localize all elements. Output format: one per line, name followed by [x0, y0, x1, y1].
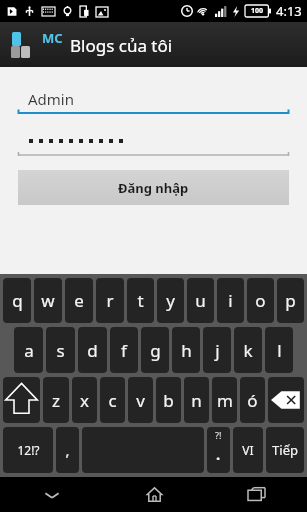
button[interactable]: p	[277, 278, 304, 323]
staticText: Admin	[28, 89, 74, 109]
staticText: w	[41, 289, 55, 312]
button[interactable]: Home	[103, 477, 205, 512]
button[interactable]	[18, 125, 289, 156]
button[interactable]: v	[128, 377, 153, 423]
button[interactable]: Đăng nhập	[18, 170, 289, 205]
staticText: .	[216, 444, 221, 464]
staticText: MC	[42, 29, 63, 47]
button[interactable]: h	[172, 327, 200, 373]
button[interactable]: q	[3, 278, 31, 323]
button[interactable]: 12!?	[3, 427, 53, 473]
staticText: r	[106, 289, 114, 312]
staticText: Blogs của tôi	[70, 34, 173, 57]
staticText: VI	[242, 442, 254, 458]
staticText: 4:13	[276, 2, 302, 20]
staticText: q	[12, 289, 23, 312]
button[interactable]: Hide keyboard	[0, 477, 103, 512]
button[interactable]: Tiếp	[266, 427, 304, 473]
staticText: a	[24, 339, 34, 362]
staticText: j	[215, 339, 220, 362]
button[interactable]: i	[217, 278, 244, 323]
button[interactable]: t	[127, 278, 154, 323]
button[interactable]: r	[96, 278, 124, 323]
button[interactable]: ó	[240, 377, 265, 423]
staticText: Tiếp	[272, 441, 298, 459]
staticText: ó	[247, 389, 258, 412]
staticText: t	[137, 289, 144, 312]
button[interactable]: n	[184, 377, 209, 423]
button[interactable]: ?!	[207, 427, 230, 473]
button[interactable]: j	[203, 327, 231, 373]
staticText: l	[277, 339, 282, 362]
staticText: h	[181, 339, 192, 362]
button[interactable]: ,	[56, 427, 79, 473]
staticText: y	[166, 289, 175, 312]
staticText: x	[80, 389, 89, 412]
button[interactable]: b	[156, 377, 181, 423]
button[interactable]: e	[65, 278, 93, 323]
staticText: 100	[251, 6, 264, 16]
button[interactable]: Shift	[3, 377, 40, 423]
staticText: g	[150, 339, 161, 362]
button[interactable]: y	[157, 278, 184, 323]
staticText: d	[87, 339, 98, 362]
button[interactable]: w	[34, 278, 62, 323]
staticText: n	[191, 389, 202, 412]
button[interactable]: x	[72, 377, 97, 423]
button[interactable]: u	[187, 278, 214, 323]
button[interactable]: d	[78, 327, 107, 373]
button[interactable]: o	[247, 278, 274, 323]
button[interactable]: Recent apps	[205, 477, 307, 512]
staticText: m	[217, 389, 233, 412]
button[interactable]: s	[46, 327, 75, 373]
staticText: e	[74, 289, 84, 312]
button[interactable]: m	[212, 377, 237, 423]
staticText: f	[121, 339, 127, 362]
staticText: z	[52, 389, 60, 412]
button[interactable]: z	[43, 377, 69, 423]
staticText: v	[136, 389, 145, 412]
staticText: p	[285, 289, 296, 312]
staticText: ,	[65, 440, 70, 460]
staticText: Đăng nhập	[118, 179, 189, 197]
staticText: k	[243, 339, 253, 362]
button[interactable]: a	[14, 327, 43, 373]
staticText: b	[163, 389, 174, 412]
staticText: s	[56, 339, 65, 362]
button[interactable]: k	[234, 327, 262, 373]
staticText: 12!?	[17, 442, 40, 458]
staticText: c	[108, 389, 117, 412]
button[interactable]: c	[100, 377, 125, 423]
button[interactable]: Backspace	[268, 377, 304, 423]
staticText: i	[228, 289, 233, 312]
button[interactable]: VI	[233, 427, 263, 473]
button[interactable]: l	[265, 327, 293, 373]
staticText: u	[195, 289, 206, 312]
button[interactable]: Admin	[18, 83, 289, 114]
staticText: ?!	[215, 429, 222, 441]
staticText: o	[255, 289, 266, 312]
button[interactable]: f	[110, 327, 138, 373]
button[interactable]: g	[141, 327, 169, 373]
